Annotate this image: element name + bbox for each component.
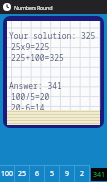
- button[interactable]: 5: [45, 165, 60, 182]
- staticText: 6: [35, 169, 40, 179]
- button[interactable]: 9: [60, 165, 75, 182]
- staticText: 100: [1, 169, 14, 179]
- button[interactable]: 2: [75, 165, 90, 182]
- staticText: 341: [93, 170, 106, 180]
- staticText: Your solution: 325: [9, 30, 96, 41]
- staticText: 25: [18, 169, 27, 179]
- other: Timer: [3, 3, 11, 11]
- staticText: 25x9=225: [11, 41, 50, 52]
- staticText: 5: [50, 169, 55, 179]
- staticText: 2: [80, 169, 85, 179]
- button[interactable]: 6: [30, 165, 45, 182]
- button[interactable]: 25: [15, 165, 30, 182]
- staticText: Answer: 341: [9, 80, 62, 91]
- staticText: Numbers Round: [14, 4, 53, 11]
- staticText: 100/5=20: [11, 91, 50, 102]
- staticText: 20-6=14: [11, 102, 45, 113]
- button[interactable]: 341: [91, 168, 107, 181]
- staticText: 9: [65, 169, 70, 179]
- staticText: 225+100=325: [11, 52, 64, 63]
- button[interactable]: 100: [0, 165, 15, 182]
